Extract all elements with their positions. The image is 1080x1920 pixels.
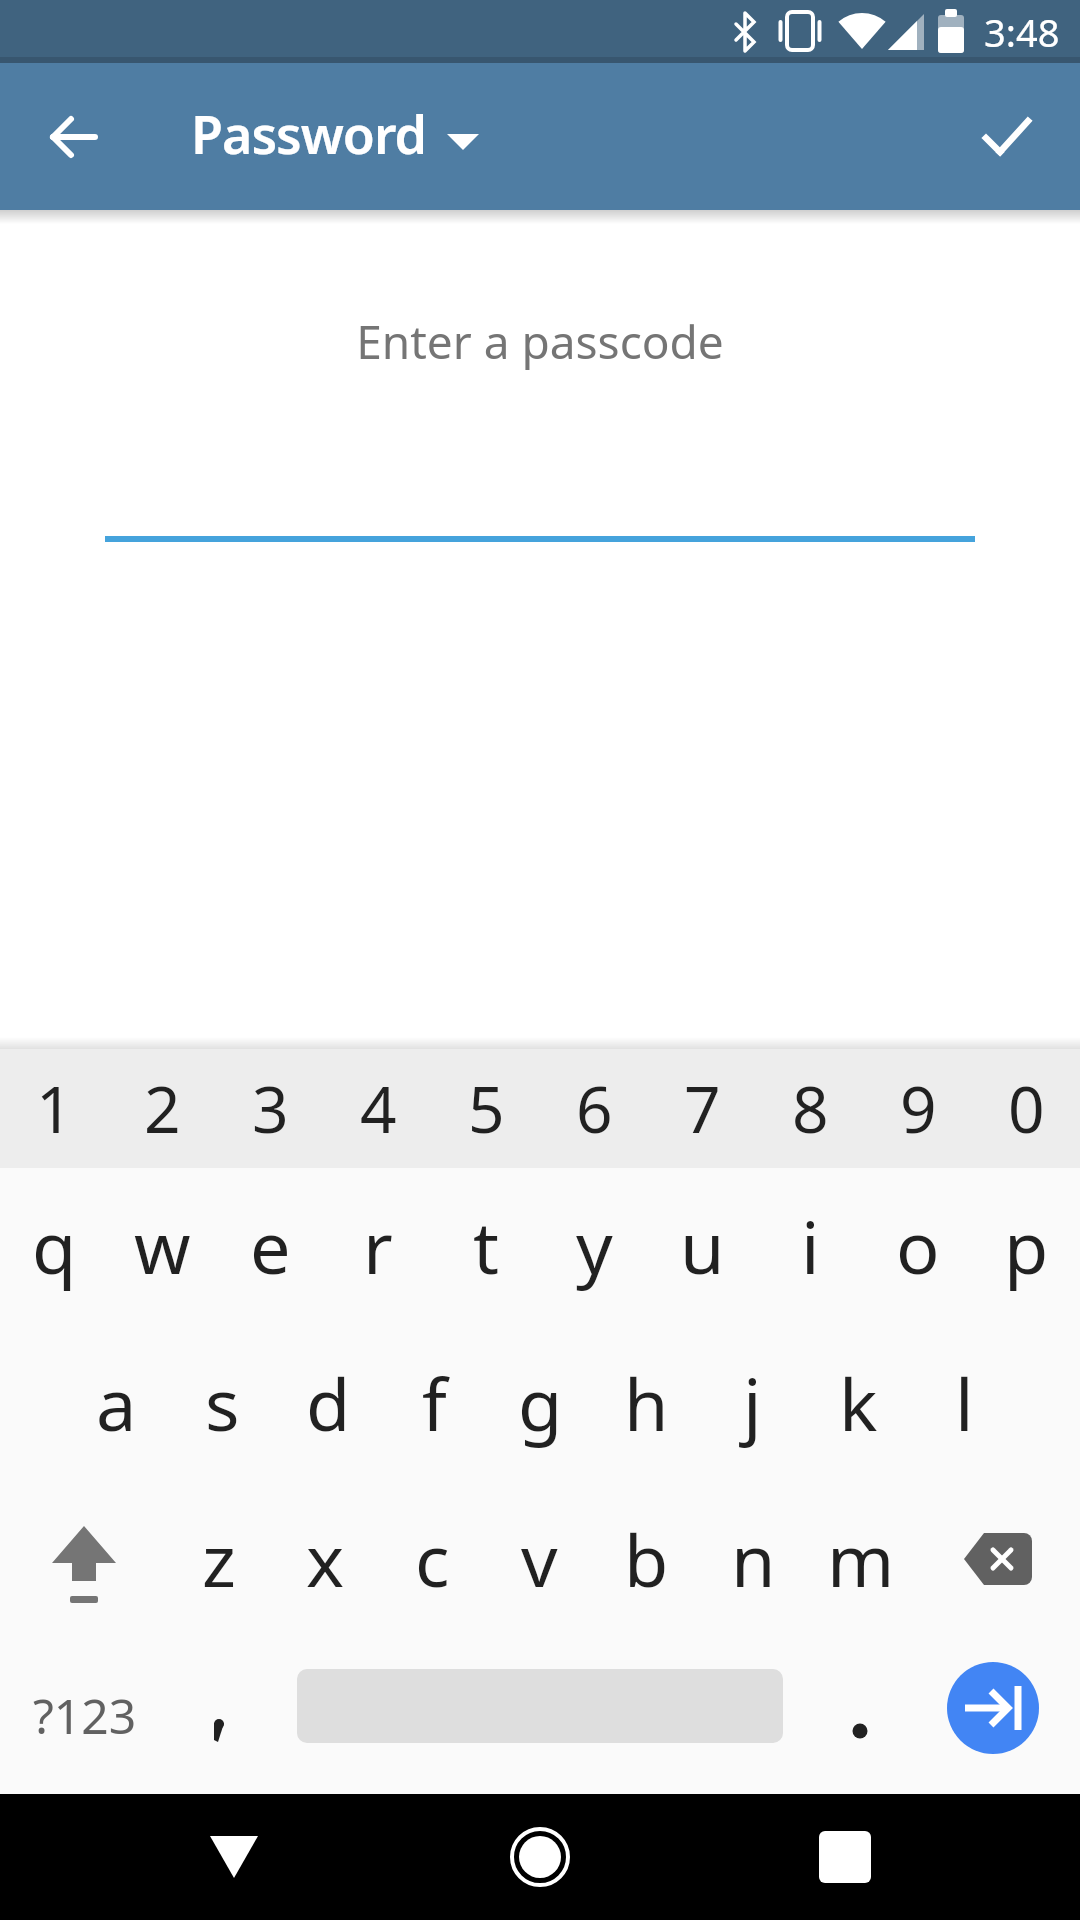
button[interactable]: c	[379, 1481, 486, 1637]
button[interactable]: j	[699, 1324, 805, 1481]
button[interactable]: w	[108, 1168, 216, 1324]
button[interactable]: x	[272, 1481, 379, 1637]
staticText: k	[839, 1354, 878, 1452]
button[interactable]: 5	[432, 1049, 540, 1168]
button[interactable]: t	[432, 1168, 540, 1324]
button[interactable]: v	[486, 1481, 593, 1637]
button[interactable]	[24, 87, 124, 187]
staticText: h	[624, 1354, 669, 1452]
staticText: w	[134, 1197, 191, 1295]
button[interactable]: f	[381, 1324, 487, 1481]
button[interactable]: o	[864, 1168, 972, 1324]
staticText: g	[518, 1354, 563, 1452]
button[interactable]: 2	[108, 1049, 216, 1168]
staticText: 5	[468, 1065, 505, 1152]
staticText: 3:48	[984, 6, 1060, 58]
staticText: o	[896, 1197, 940, 1295]
staticText: 0	[1008, 1065, 1045, 1152]
button[interactable]: d	[275, 1324, 381, 1481]
button[interactable]: m	[807, 1481, 914, 1637]
button[interactable]: p	[972, 1168, 1080, 1324]
button[interactable]: r	[324, 1168, 432, 1324]
button[interactable]: 4	[324, 1049, 432, 1168]
button[interactable]: h	[593, 1324, 699, 1481]
staticText: v	[521, 1510, 558, 1608]
staticText: 1	[36, 1065, 73, 1152]
staticText: 8	[792, 1065, 829, 1152]
button[interactable]	[0, 1481, 168, 1637]
button[interactable]: 6	[540, 1049, 648, 1168]
button[interactable]	[480, 1794, 600, 1920]
button[interactable]	[785, 1794, 905, 1920]
staticText: 2	[144, 1065, 181, 1152]
button[interactable]: b	[593, 1481, 700, 1637]
staticText: 9	[900, 1065, 937, 1152]
button[interactable]: l	[911, 1324, 1017, 1481]
button[interactable]: 3	[216, 1049, 324, 1168]
button[interactable]: a	[63, 1324, 169, 1481]
staticText: e	[250, 1197, 291, 1295]
button[interactable]: u	[648, 1168, 756, 1324]
staticText: f	[422, 1354, 447, 1452]
button[interactable]	[915, 1481, 1080, 1637]
button[interactable]: Password	[181, 71, 491, 195]
staticText: j	[743, 1354, 762, 1452]
button[interactable]: 9	[864, 1049, 972, 1168]
staticText: q	[32, 1197, 77, 1295]
staticText: a	[96, 1354, 137, 1452]
button[interactable]	[170, 1637, 268, 1794]
button[interactable]: z	[165, 1481, 272, 1637]
button[interactable]: ?123	[0, 1637, 170, 1794]
button[interactable]: i	[756, 1168, 864, 1324]
button[interactable]: q	[0, 1168, 108, 1324]
staticText: ?123	[33, 1683, 137, 1748]
button[interactable]: 1	[0, 1049, 108, 1168]
staticText: c	[415, 1510, 450, 1608]
staticText: l	[955, 1354, 974, 1452]
staticText: 6	[576, 1065, 613, 1152]
staticText: z	[202, 1510, 236, 1608]
staticText: m	[827, 1510, 895, 1608]
button[interactable]: y	[540, 1168, 648, 1324]
staticText: s	[205, 1354, 240, 1452]
staticText: x	[306, 1510, 345, 1608]
staticText: Password	[191, 98, 426, 169]
staticText: r	[363, 1197, 393, 1295]
button[interactable]: 7	[648, 1049, 756, 1168]
button[interactable]	[957, 87, 1057, 187]
staticText: n	[731, 1510, 776, 1608]
button[interactable]	[174, 1794, 294, 1920]
staticText: t	[473, 1197, 499, 1295]
staticText: 3	[252, 1065, 289, 1152]
staticText: b	[624, 1510, 669, 1608]
button[interactable]: 0	[972, 1049, 1080, 1168]
staticText: y	[576, 1197, 613, 1295]
staticText: d	[306, 1354, 351, 1452]
staticText: 4	[360, 1065, 397, 1152]
staticText: 7	[684, 1065, 721, 1152]
button[interactable]	[908, 1637, 1080, 1794]
button[interactable]: n	[700, 1481, 807, 1637]
button[interactable]: s	[169, 1324, 275, 1481]
button[interactable]: k	[805, 1324, 911, 1481]
button[interactable]: g	[487, 1324, 593, 1481]
button[interactable]: e	[216, 1168, 324, 1324]
staticText: Enter a passcode	[0, 310, 1080, 373]
button[interactable]: 8	[756, 1049, 864, 1168]
staticText: i	[801, 1197, 820, 1295]
staticText: u	[680, 1197, 725, 1295]
staticText: p	[1004, 1197, 1049, 1295]
button[interactable]	[812, 1637, 908, 1794]
